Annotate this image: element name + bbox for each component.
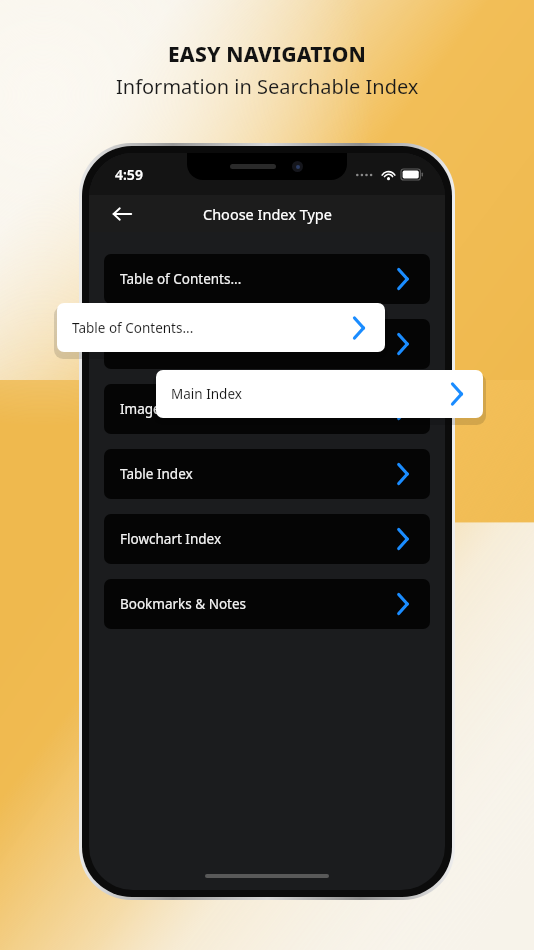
button[interactable]: Flowchart Index [104,514,430,564]
button[interactable]: Table of Contents... [104,254,430,304]
staticText: EASY NAVIGATION [168,40,367,69]
button[interactable]: Main Index [156,370,483,418]
staticText: Flowchart Index [120,530,222,548]
button[interactable]: Table Index [104,449,430,499]
staticText: 4:59 [115,165,143,184]
staticText: Choose Index Type [203,204,332,224]
button[interactable]: Back [107,199,137,229]
staticText: Table Index [120,465,193,483]
staticText: Main Index [171,385,242,403]
button[interactable]: Bookmarks & Notes [104,579,430,629]
button[interactable] [104,319,430,369]
staticText: Bookmarks & Notes [120,595,247,613]
staticText: Image Index [120,400,200,418]
staticText: Table of Contents... [120,270,242,288]
staticText: Information in Searchable Index [116,73,419,100]
button[interactable]: Table of Contents... [57,303,385,352]
button[interactable]: Image Index [104,384,430,434]
staticText: Table of Contents... [72,319,194,337]
